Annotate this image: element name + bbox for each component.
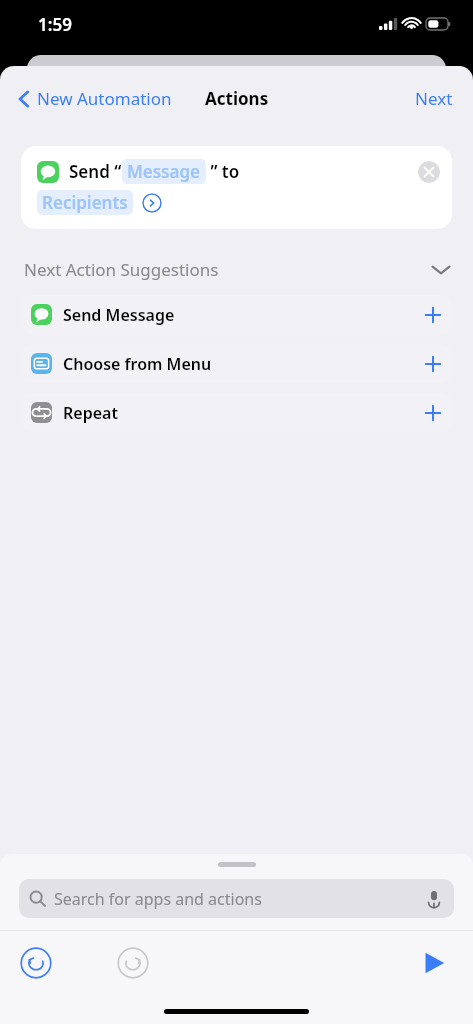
button[interactable]: New Automation (12, 83, 178, 114)
staticText: Send “ (69, 160, 122, 183)
button[interactable]: Next (409, 83, 459, 114)
button[interactable]: Send “ (21, 146, 452, 229)
staticText: Message (127, 160, 201, 183)
button[interactable]: Recipients (37, 190, 133, 215)
button[interactable]: Next Action Suggestions (0, 256, 473, 283)
button[interactable]: Voice search (424, 889, 444, 909)
button[interactable]: Repeat (21, 393, 452, 432)
button[interactable]: Run shortcut (417, 946, 451, 980)
button[interactable]: Search for apps and actions (19, 879, 454, 918)
staticText: Search for apps and actions (54, 888, 262, 910)
staticText: Choose from Menu (63, 353, 212, 375)
staticText: Actions (205, 87, 269, 110)
button[interactable]: Show more (142, 193, 162, 213)
button[interactable]: Undo (20, 947, 52, 979)
button[interactable]: Remove action (418, 161, 440, 183)
staticText: ” to (206, 160, 240, 183)
staticText: 1:59 (38, 13, 72, 36)
staticText: Next (415, 87, 453, 110)
staticText: New Automation (37, 87, 172, 110)
button[interactable]: Choose from Menu (21, 344, 452, 383)
staticText: Next Action Suggestions (24, 258, 219, 281)
button[interactable]: Redo (117, 947, 149, 979)
staticText: Send Message (63, 304, 175, 326)
button[interactable]: Send Message (21, 295, 452, 334)
staticText: Repeat (63, 402, 118, 424)
staticText: Recipients (42, 191, 128, 214)
